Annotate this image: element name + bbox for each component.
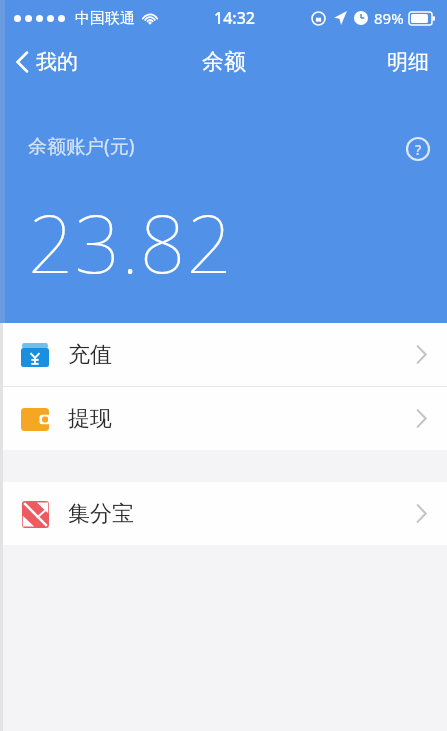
- button[interactable]: 充值: [0, 323, 447, 386]
- staticText: 中国联通: [75, 9, 135, 28]
- staticText: ?: [415, 140, 422, 159]
- staticText: 89%: [374, 8, 404, 28]
- staticText: 余额账户(元): [28, 133, 135, 159]
- staticText: 余额: [202, 48, 246, 76]
- staticText: 充值: [68, 341, 112, 369]
- button[interactable]: Help: [405, 136, 431, 162]
- button[interactable]: 明细: [387, 49, 429, 75]
- staticText: 14:32: [214, 7, 255, 29]
- button[interactable]: 提现: [0, 387, 447, 450]
- staticText: 提现: [68, 405, 112, 433]
- button[interactable]: 我的: [16, 36, 78, 88]
- staticText: 23.82: [28, 187, 233, 296]
- staticText: 集分宝: [68, 500, 134, 528]
- button[interactable]: 集分宝: [0, 482, 447, 545]
- staticText: 我的: [36, 49, 78, 75]
